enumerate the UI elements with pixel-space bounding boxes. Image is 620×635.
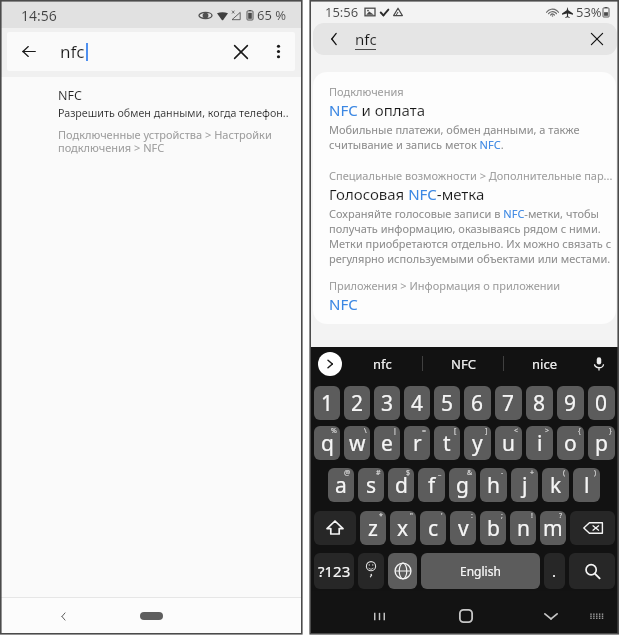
button[interactable]: a xyxy=(328,468,354,502)
staticText: y xyxy=(472,429,483,458)
button[interactable]: n xyxy=(510,511,536,545)
staticText: ' xyxy=(441,511,443,521)
button[interactable]: Voice input xyxy=(584,347,614,380)
staticText: 2 xyxy=(351,389,364,418)
button[interactable]: e xyxy=(374,426,400,460)
staticText: v xyxy=(458,514,469,543)
button[interactable]: 5 xyxy=(434,386,460,420)
button[interactable]: Back xyxy=(313,23,355,55)
staticText: n xyxy=(517,514,530,543)
button[interactable]: nfc xyxy=(342,347,422,380)
button[interactable]: d xyxy=(388,468,414,502)
button[interactable]: Switch keyboard xyxy=(577,596,617,635)
button[interactable]: Search xyxy=(569,553,615,589)
button[interactable]: f xyxy=(418,468,445,502)
button[interactable]: Expand toolbar xyxy=(318,352,342,376)
button[interactable]: Home xyxy=(446,596,486,635)
button[interactable]: Подключения xyxy=(325,80,616,156)
button[interactable]: p xyxy=(588,426,615,460)
button[interactable]: h xyxy=(480,468,507,502)
staticText: 7 xyxy=(502,389,515,418)
button[interactable]: c xyxy=(420,511,446,545)
staticText: Подключения xyxy=(329,84,404,99)
staticText: . xyxy=(552,561,557,581)
button[interactable]: t xyxy=(434,426,460,460)
staticText: 8 xyxy=(533,389,546,418)
staticText: $ xyxy=(406,468,411,478)
staticText: Мобильные платежи, обмен данными, а такж… xyxy=(329,122,616,152)
staticText: Подключенные устройства > Настройки подк… xyxy=(58,127,297,155)
button[interactable]: x xyxy=(390,511,416,545)
staticText: NFC xyxy=(451,355,476,373)
staticText: ! xyxy=(531,511,533,521)
button[interactable]: English xyxy=(421,553,540,589)
button[interactable]: Back xyxy=(7,32,51,71)
staticText: 53% xyxy=(576,3,602,21)
staticText: * xyxy=(379,511,383,521)
button[interactable]: NFC xyxy=(41,83,299,163)
button[interactable]: Backspace xyxy=(570,511,615,545)
staticText: i xyxy=(537,429,543,458)
staticText: nfc xyxy=(373,355,392,373)
button[interactable]: k xyxy=(542,468,569,502)
button[interactable]: s xyxy=(358,468,384,502)
button[interactable]: Home xyxy=(140,612,163,620)
staticText: NFC xyxy=(58,87,82,104)
button[interactable]: Clear query xyxy=(221,32,261,71)
staticText: c xyxy=(428,514,439,543)
staticText: " xyxy=(410,511,413,521)
button[interactable]: ?123 xyxy=(314,553,354,589)
button[interactable]: u xyxy=(495,426,522,460)
staticText: NFC xyxy=(329,294,358,314)
button[interactable]: b xyxy=(480,511,506,545)
button[interactable]: Back xyxy=(49,602,77,630)
staticText: _ xyxy=(438,468,442,478)
button[interactable]: l xyxy=(573,468,600,502)
button[interactable]: r xyxy=(404,426,430,460)
button[interactable]: w xyxy=(344,426,370,460)
button[interactable]: Back xyxy=(7,32,295,71)
button[interactable]: Back xyxy=(313,23,617,55)
staticText: English xyxy=(460,563,501,579)
button[interactable]: Recents xyxy=(359,596,399,635)
button[interactable]: z xyxy=(360,511,386,545)
button[interactable]: 4 xyxy=(404,386,430,420)
staticText: 6 xyxy=(471,389,484,418)
staticText: g xyxy=(456,471,469,500)
staticText: nfc xyxy=(355,29,377,49)
staticText: 4 xyxy=(411,389,424,418)
button[interactable]: Change language xyxy=(388,553,417,589)
button[interactable]: j xyxy=(511,468,538,502)
staticText: ) xyxy=(594,468,597,478)
staticText: t xyxy=(443,429,451,458)
button[interactable]: More options xyxy=(261,32,295,71)
button[interactable]: 3 xyxy=(374,386,400,420)
button[interactable]: nice xyxy=(504,347,584,380)
button[interactable]: NFC xyxy=(423,347,503,380)
button[interactable]: Приложения > Информация о приложении xyxy=(325,274,616,318)
staticText: p xyxy=(595,429,608,458)
button[interactable]: . xyxy=(544,553,565,589)
button[interactable]: q xyxy=(314,426,340,460)
button[interactable]: Clear query xyxy=(577,23,617,55)
button[interactable]: 1 xyxy=(314,386,340,420)
button[interactable]: 2 xyxy=(344,386,370,420)
button[interactable]: Hide keyboard xyxy=(531,596,571,635)
button[interactable]: Специальные возможности > Дополнительные… xyxy=(325,164,616,270)
button[interactable]: v xyxy=(450,511,476,545)
button[interactable]: Emoji and comma xyxy=(358,553,384,589)
button[interactable]: 0 xyxy=(588,386,615,420)
button[interactable]: 9 xyxy=(557,386,584,420)
staticText: 15:56 xyxy=(325,3,359,21)
staticText: % xyxy=(331,426,337,436)
button[interactable]: 7 xyxy=(495,386,522,420)
button[interactable]: 8 xyxy=(526,386,553,420)
button[interactable]: g xyxy=(449,468,476,502)
button[interactable]: o xyxy=(557,426,584,460)
button[interactable]: y xyxy=(464,426,491,460)
button[interactable]: m xyxy=(540,511,566,545)
button[interactable]: i xyxy=(526,426,553,460)
button[interactable]: Shift xyxy=(314,511,356,545)
button[interactable]: 6 xyxy=(464,386,491,420)
staticText: Разрешить обмен данными, когда телефон.. xyxy=(58,106,289,121)
